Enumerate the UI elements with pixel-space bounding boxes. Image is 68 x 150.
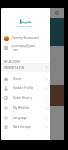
staticText: yummyapp@gmail	[12, 44, 35, 48]
button[interactable]: Order History	[1, 93, 50, 103]
staticText: INTERNET & FUN	[4, 66, 25, 69]
button[interactable]: My Wishlist	[1, 103, 50, 113]
button[interactable]: Language	[1, 113, 50, 123]
staticText: My Wishlist	[13, 106, 29, 110]
staticText: .com	[12, 48, 18, 52]
staticText: Order History	[13, 96, 33, 100]
button[interactable]: INTERNET & FUN	[1, 63, 50, 72]
staticText: Yummy App	[17, 24, 33, 27]
button[interactable]: Yummy Restaurant	[1, 33, 50, 43]
staticText: Home	[13, 77, 22, 81]
button[interactable]: yummyapp@gmail	[1, 43, 50, 53]
button[interactable]: Update Profile	[1, 83, 50, 93]
staticText: Yummy Restaurant	[12, 36, 39, 40]
staticText: Update Profile	[13, 86, 34, 90]
button[interactable]: Home	[1, 74, 50, 84]
other: Search	[55, 11, 59, 15]
staticText: Rate the app	[13, 125, 31, 129]
staticText: Language	[13, 116, 28, 120]
staticText: MY ACCOUNT	[4, 60, 21, 63]
button[interactable]: Rate the app	[1, 122, 50, 132]
button[interactable]: MY ACCOUNT	[1, 58, 50, 64]
